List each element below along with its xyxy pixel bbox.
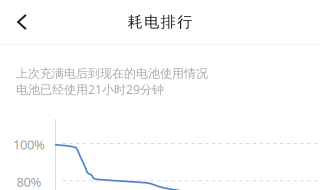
staticText: 80% bbox=[16, 173, 41, 190]
staticText: 上次充满电后到现在的电池使用情况 bbox=[16, 66, 208, 81]
staticText: 耗电排行 bbox=[128, 13, 192, 31]
staticText: 100% bbox=[13, 135, 45, 153]
button[interactable]: Back bbox=[0, 0, 44, 44]
staticText: 电池已经使用21小时29分钟 bbox=[16, 81, 164, 97]
